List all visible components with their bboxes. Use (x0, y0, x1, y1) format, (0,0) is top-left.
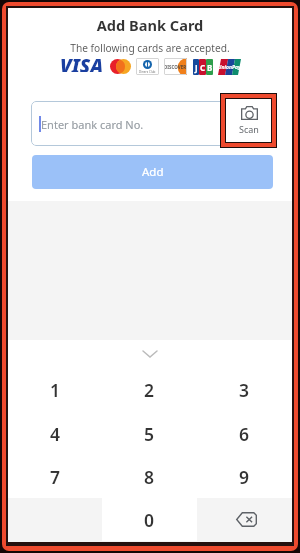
staticText: Add (142, 164, 164, 180)
staticText: 7 (50, 465, 61, 489)
button[interactable]: Hide keyboard (134, 340, 166, 368)
staticText: 6 (239, 422, 250, 446)
staticText: VISA (60, 53, 104, 72)
staticText: 8 (144, 465, 155, 489)
button[interactable]: 2 (102, 368, 197, 412)
staticText: C (200, 62, 206, 73)
staticText: DISCOVER (164, 64, 187, 70)
button[interactable]: 6 (197, 412, 292, 456)
button[interactable]: Add (32, 155, 273, 189)
button[interactable]: 0 (102, 498, 197, 541)
staticText: Enter bank card No. (41, 117, 144, 132)
staticText: B (207, 62, 213, 73)
button[interactable]: 9 (197, 456, 292, 498)
button[interactable]: Enter bank card No. (31, 101, 230, 146)
button[interactable]: 4 (8, 412, 102, 456)
staticText: 0 (144, 508, 155, 532)
staticText: Scan (239, 123, 259, 135)
button[interactable]: 8 (102, 456, 197, 498)
staticText: 2 (144, 378, 155, 402)
button[interactable]: 7 (8, 456, 102, 498)
button[interactable]: 1 (8, 368, 102, 412)
staticText: 9 (239, 465, 250, 489)
staticText: 1 (50, 378, 61, 402)
button[interactable]: Backspace (197, 498, 292, 541)
button[interactable]: 3 (197, 368, 292, 412)
staticText: 4 (50, 422, 61, 446)
staticText: J (195, 62, 198, 73)
staticText: The following cards are accepted. (8, 41, 292, 55)
staticText: Add Bank Card (8, 15, 292, 35)
staticText: UnionPay (218, 64, 241, 71)
staticText: Diners Club (139, 70, 156, 74)
staticText: 3 (239, 378, 250, 402)
staticText: 5 (144, 422, 155, 446)
button[interactable]: 5 (102, 412, 197, 456)
button[interactable]: Scan (226, 99, 271, 142)
